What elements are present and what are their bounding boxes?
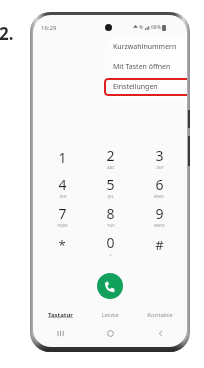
button[interactable]: Kurzwahlnummern — [105, 37, 187, 57]
staticText: GHI — [59, 194, 67, 199]
staticText: TUV — [107, 223, 115, 228]
staticText: 68% — [151, 24, 161, 31]
button[interactable]: 7 — [42, 201, 82, 230]
staticText: MNO — [154, 194, 164, 199]
button[interactable]: Letzte — [87, 307, 133, 323]
button[interactable]: # — [139, 230, 179, 259]
staticText: 16:29 — [41, 24, 57, 32]
button[interactable]: 0 — [90, 230, 130, 259]
staticText: JKL — [108, 194, 114, 199]
staticText: + — [109, 252, 112, 257]
staticText: DEF — [156, 165, 164, 170]
staticText: Kurzwahlnummern — [113, 42, 177, 52]
button[interactable]: Tastatur — [37, 307, 83, 323]
staticText: ABC — [107, 165, 115, 170]
button[interactable]: 1 — [42, 143, 82, 172]
staticText: 2. — [0, 22, 14, 45]
staticText: 8 — [106, 204, 115, 223]
staticText: WXYZ — [154, 223, 165, 228]
button[interactable]: * — [42, 230, 82, 259]
staticText: Kontakte — [147, 311, 173, 319]
staticText: 3 — [155, 146, 164, 165]
staticText: 4 — [58, 175, 67, 194]
staticText: Letzte — [101, 311, 119, 319]
staticText: * — [58, 236, 66, 254]
button[interactable]: Einstellungen — [105, 77, 187, 97]
staticText: 7 — [58, 204, 67, 223]
button[interactable]: 4 — [42, 172, 82, 201]
button[interactable]: Startbildschirm — [87, 325, 133, 341]
button[interactable]: Letzte Apps — [37, 325, 83, 341]
staticText: Tastatur — [48, 311, 73, 319]
staticText: 5 — [106, 175, 115, 194]
button[interactable]: Kontakte — [137, 307, 183, 323]
staticText: Mit Tasten öffnen — [113, 62, 171, 72]
staticText: # — [155, 236, 164, 254]
button[interactable]: 5 — [90, 172, 130, 201]
staticText: 1 — [58, 148, 67, 167]
staticText: Einstellungen — [113, 82, 158, 92]
button[interactable]: 6 — [139, 172, 179, 201]
staticText: PQRS — [57, 223, 68, 228]
button[interactable]: Mit Tasten öffnen — [105, 57, 187, 77]
staticText: 0 — [106, 233, 115, 252]
staticText: 6 — [155, 175, 164, 194]
staticText: 9 — [155, 204, 164, 223]
button[interactable]: Anrufen — [97, 273, 123, 299]
button[interactable]: Zurück — [137, 325, 183, 341]
button[interactable]: 9 — [139, 201, 179, 230]
staticText: % — [139, 24, 144, 31]
button[interactable]: 2 — [90, 143, 130, 172]
staticText: 2 — [106, 146, 115, 165]
button[interactable]: 3 — [139, 143, 179, 172]
button[interactable]: 8 — [90, 201, 130, 230]
